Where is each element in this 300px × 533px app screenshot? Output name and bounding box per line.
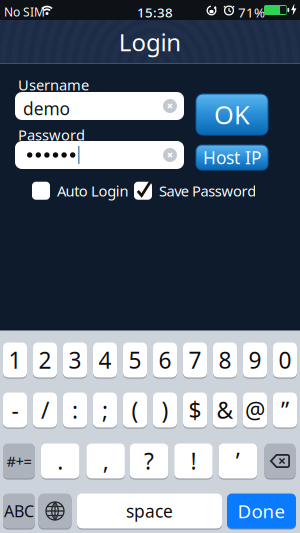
button[interactable]: & <box>213 392 237 428</box>
button[interactable]: 0 <box>273 342 297 378</box>
button[interactable]: - <box>3 392 27 428</box>
staticText: demo <box>23 97 69 120</box>
staticText: 4 <box>98 345 111 375</box>
button[interactable]: ! <box>174 443 213 479</box>
button[interactable]: ? <box>130 443 168 479</box>
staticText: 1 <box>8 345 21 375</box>
staticText: ! <box>190 446 196 476</box>
button[interactable]: 3 <box>63 342 87 378</box>
button[interactable]: Auto Login <box>32 181 128 200</box>
staticText: ABC <box>4 500 34 522</box>
button[interactable] <box>15 141 184 169</box>
staticText: Login <box>119 26 181 58</box>
button[interactable]: / <box>33 392 57 428</box>
button[interactable]: Done <box>227 493 296 529</box>
button[interactable]: : <box>63 392 87 428</box>
button[interactable]: 4 <box>93 342 117 378</box>
button[interactable]: 8 <box>213 342 237 378</box>
staticText: Username <box>18 75 89 94</box>
button[interactable]: #+= <box>3 443 35 479</box>
staticText: ” <box>281 395 289 425</box>
staticText: 3 <box>68 345 81 375</box>
staticText: OK <box>214 98 250 131</box>
button[interactable]: $ <box>183 392 207 428</box>
staticText: No SIM <box>4 4 45 20</box>
staticText: 0 <box>278 345 291 375</box>
button[interactable]: Clear text <box>163 148 177 162</box>
staticText: 7 <box>188 345 201 375</box>
staticText: #+= <box>6 451 31 471</box>
staticText: 5 <box>128 345 141 375</box>
staticText: 9 <box>248 345 261 375</box>
button[interactable]: @ <box>243 392 267 428</box>
button[interactable]: Host IP <box>196 145 268 170</box>
button[interactable]: , <box>86 443 125 479</box>
button[interactable]: ” <box>273 392 297 428</box>
button[interactable]: 9 <box>243 342 267 378</box>
button[interactable]: 1 <box>3 342 27 378</box>
staticText: Done <box>237 499 285 523</box>
button[interactable]: 7 <box>183 342 207 378</box>
button[interactable]: ABC <box>3 493 35 529</box>
staticText: - <box>11 395 18 425</box>
button[interactable]: ; <box>93 392 117 428</box>
button[interactable]: 2 <box>33 342 57 378</box>
staticText: : <box>72 395 78 425</box>
staticText: Host IP <box>203 146 261 169</box>
button[interactable]: Delete <box>264 443 295 479</box>
button[interactable]: space <box>77 493 222 529</box>
staticText: @ <box>245 395 265 425</box>
button[interactable]: 6 <box>153 342 177 378</box>
button[interactable]: . <box>41 443 79 479</box>
staticText: & <box>216 395 233 425</box>
staticText: / <box>41 395 49 425</box>
staticText: ’ <box>236 446 240 476</box>
button[interactable]: OK <box>196 94 268 135</box>
staticText: 8 <box>218 345 231 375</box>
button[interactable]: demo <box>15 92 184 120</box>
staticText: Save Password <box>159 181 256 200</box>
button[interactable]: ) <box>153 392 177 428</box>
button[interactable]: 5 <box>123 342 147 378</box>
button[interactable]: ’ <box>219 443 257 479</box>
staticText: ; <box>102 395 108 425</box>
button[interactable]: ( <box>123 392 147 428</box>
staticText: . <box>57 446 63 476</box>
button[interactable]: Clear text <box>163 99 177 113</box>
button[interactable]: Next keyboard <box>38 493 71 529</box>
staticText: ( <box>131 395 138 425</box>
staticText: 6 <box>158 345 171 375</box>
staticText: 15:38 <box>137 3 173 21</box>
staticText: 71% <box>238 3 265 21</box>
staticText: , <box>103 446 109 476</box>
staticText: 2 <box>38 345 51 375</box>
staticText: Auto Login <box>57 181 128 200</box>
button[interactable]: Save Password <box>134 181 256 200</box>
staticText: ? <box>144 446 154 476</box>
staticText: ) <box>161 395 168 425</box>
staticText: $ <box>188 395 201 425</box>
staticText: Password <box>18 125 85 144</box>
staticText: space <box>126 499 173 522</box>
